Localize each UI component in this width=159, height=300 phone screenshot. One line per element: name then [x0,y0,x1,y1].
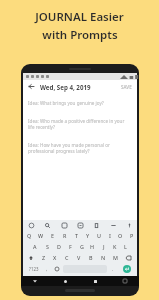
staticText: JOURNAL Easier [35,9,124,25]
staticText: Idea: How have you made personal or [28,142,110,148]
button[interactable]: T [71,230,82,241]
staticText: H [90,243,95,250]
staticText: . [112,266,114,272]
button[interactable]: Z [38,252,49,263]
staticText: R [63,232,67,239]
staticText: G [80,243,84,250]
button[interactable]: Search [43,221,51,229]
staticText: O [118,232,123,239]
button[interactable]: A [29,241,41,252]
button[interactable]: Y [82,230,93,241]
staticText: C [65,254,69,261]
button[interactable]: V [73,252,85,263]
staticText: J [103,243,105,250]
button[interactable]: Backspace [121,252,136,263]
button[interactable]: L [120,241,131,252]
staticText: W [38,232,44,239]
button[interactable]: M [109,252,121,263]
button[interactable]: Stickers [60,221,68,229]
button[interactable]: H [87,241,98,252]
button[interactable]: Emoji [52,265,62,273]
staticText: V [77,254,81,261]
button[interactable]: N [97,252,109,263]
button[interactable]: ?123 [25,265,42,273]
button[interactable]: U [93,230,104,241]
button[interactable]: SAVE [120,84,133,90]
button[interactable]: Shift [24,252,38,263]
staticText: SAVE [121,84,132,90]
button[interactable]: Back [27,82,36,91]
staticText: M [113,254,118,261]
button[interactable]: Google [27,221,35,229]
staticText: Idea: What brings you genuine joy? [28,100,104,106]
button[interactable]: Enter [123,265,131,273]
button[interactable]: D [53,241,65,252]
button[interactable]: Voice input [125,221,133,229]
staticText: D [57,243,61,250]
button[interactable]: , [42,265,52,273]
button[interactable]: Settings [109,221,117,229]
button[interactable]: Q [23,230,35,241]
button[interactable]: Switch keyboard [121,277,129,285]
button[interactable]: P [126,230,137,241]
button[interactable]: K [109,241,120,252]
staticText: S [46,243,49,250]
staticText: Idea: Who made a positive difference in … [28,118,125,124]
staticText: X [53,254,57,261]
button[interactable]: J [98,241,109,252]
staticText: professional progress lately? [28,148,90,154]
staticText: B [89,254,93,261]
button[interactable]: X [49,252,61,263]
staticText: U [97,232,101,239]
button[interactable]: F [65,241,76,252]
button[interactable]: GIF [76,221,84,229]
staticText: N [101,254,106,261]
button[interactable]: Home [61,277,69,285]
button[interactable]: Back [31,277,39,285]
staticText: with Prompts [42,27,118,43]
button[interactable]: B [85,252,97,263]
button[interactable]: R [59,230,71,241]
staticText: T [75,232,79,239]
staticText: life recently? [28,124,56,130]
staticText: Y [86,232,90,239]
staticText: Wed, Sep 4, 2019 [40,83,91,91]
button[interactable]: G [76,241,87,252]
staticText: L [124,243,127,250]
button[interactable]: C [61,252,73,263]
staticText: K [113,243,117,250]
button[interactable]: Clipboard [92,221,100,229]
button[interactable]: S [41,241,53,252]
staticText: E [51,232,55,239]
button[interactable]: I [104,230,115,241]
staticText: Z [42,254,46,261]
staticText: I [109,232,111,239]
button[interactable]: O [115,230,126,241]
button[interactable]: E [47,230,59,241]
button[interactable]: . [108,265,118,273]
button[interactable]: Recents [91,277,99,285]
staticText: , [46,266,48,272]
staticText: P [130,232,134,239]
staticText: ?123 [29,266,39,272]
staticText: Q [27,232,32,239]
staticText: F [69,243,72,250]
staticText: A [33,243,37,250]
button[interactable]: W [35,230,47,241]
